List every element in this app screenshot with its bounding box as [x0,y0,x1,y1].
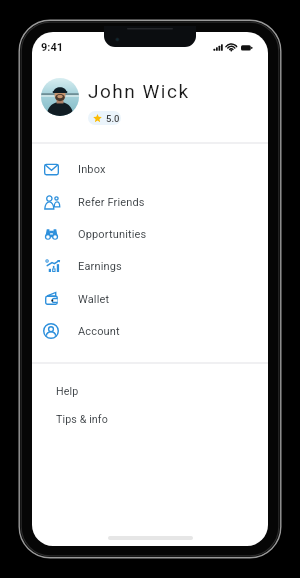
button[interactable]: Opportunities [32,218,268,250]
button[interactable]: Tips & info [32,405,268,434]
staticText: Tips & info [56,413,108,426]
staticText: Refer Friends [78,196,145,209]
staticText: Earnings [78,260,122,273]
staticText: Inbox [78,163,106,176]
button[interactable]: Earnings [32,250,268,282]
button[interactable]: 5.0 [88,111,121,125]
button[interactable]: Account [32,315,268,347]
staticText: 9:41 [41,41,64,54]
staticText: Account [78,325,120,338]
staticText: Wallet [78,293,110,306]
button[interactable]: Help [32,377,268,406]
staticText: 5.0 [106,113,120,124]
button[interactable]: Wallet [32,283,268,315]
button[interactable]: Inbox [32,153,268,185]
staticText: Opportunities [78,228,147,241]
button[interactable]: Refer Friends [32,186,268,218]
staticText: John Wick [88,80,190,102]
staticText: Help [56,385,79,398]
